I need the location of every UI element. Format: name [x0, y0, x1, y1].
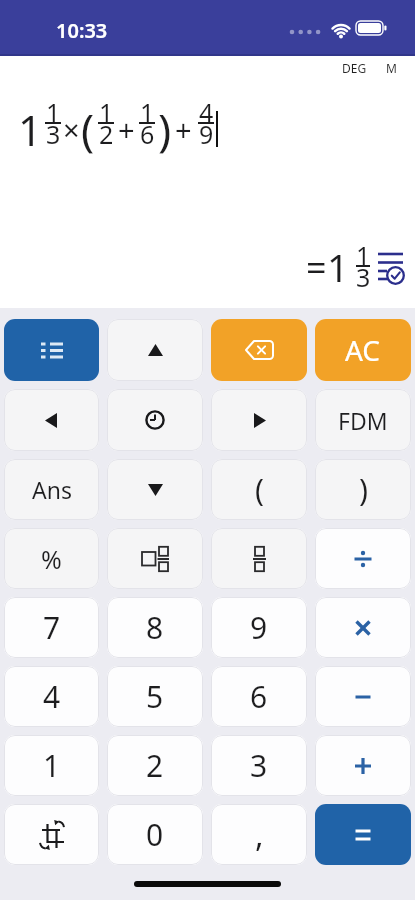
button[interactable]: 9: [211, 597, 307, 658]
button[interactable]: %: [4, 528, 99, 589]
button[interactable]: [4, 804, 99, 865]
button[interactable]: 1: [4, 735, 99, 796]
button[interactable]: 4: [4, 666, 99, 727]
button[interactable]: [211, 319, 307, 381]
button[interactable]: 2: [107, 735, 203, 796]
staticText: +: [175, 110, 192, 149]
staticText: 6: [250, 676, 268, 717]
staticText: =: [306, 243, 327, 292]
button[interactable]: 5: [107, 666, 203, 727]
staticText: +: [118, 110, 135, 149]
button[interactable]: ): [315, 459, 411, 520]
button[interactable]: [315, 528, 411, 589]
button[interactable]: [315, 735, 411, 796]
button[interactable]: [315, 597, 411, 658]
button[interactable]: Ans: [4, 459, 99, 520]
button[interactable]: [107, 319, 203, 381]
button[interactable]: [211, 528, 307, 589]
staticText: 3: [250, 745, 268, 786]
button[interactable]: [107, 389, 203, 451]
staticText: 2: [99, 117, 114, 151]
button[interactable]: 6: [211, 666, 307, 727]
button[interactable]: 8: [107, 597, 203, 658]
staticText: 9: [199, 117, 214, 151]
staticText: 6: [140, 117, 155, 151]
staticText: 8: [146, 607, 164, 648]
button[interactable]: ,: [211, 804, 307, 865]
staticText: ,: [255, 813, 264, 857]
staticText: (: [255, 469, 264, 510]
button[interactable]: (: [211, 459, 307, 520]
staticText: 9: [250, 607, 268, 648]
staticText: 3: [356, 260, 371, 294]
staticText: 1: [46, 95, 61, 129]
staticText: FDM: [338, 405, 388, 436]
button[interactable]: [107, 459, 203, 520]
button[interactable]: [378, 249, 404, 285]
staticText: Ans: [32, 474, 72, 505]
button[interactable]: [4, 389, 99, 451]
button[interactable]: [107, 528, 203, 589]
staticText: AC: [345, 331, 381, 369]
staticText: 1: [356, 238, 371, 272]
staticText: ×: [63, 110, 80, 149]
staticText: 0: [146, 814, 164, 855]
staticText: DEG: [342, 60, 367, 76]
staticText: 5: [146, 676, 164, 717]
staticText: 1: [327, 241, 349, 293]
button[interactable]: FDM: [315, 389, 411, 451]
staticText: 1: [18, 101, 43, 158]
staticText: (: [81, 99, 95, 159]
staticText: 1: [99, 95, 114, 129]
staticText: ): [359, 469, 368, 510]
button[interactable]: 7: [4, 597, 99, 658]
staticText: 4: [43, 676, 61, 717]
button[interactable]: [315, 804, 411, 865]
staticText: 1: [43, 745, 61, 786]
button[interactable]: [315, 666, 411, 727]
staticText: 1: [140, 95, 155, 129]
staticText: 3: [46, 117, 61, 151]
button[interactable]: [211, 389, 307, 451]
staticText: M: [386, 60, 397, 76]
staticText: 7: [43, 607, 61, 648]
button[interactable]: [4, 319, 99, 381]
button[interactable]: 0: [107, 804, 203, 865]
staticText: 4: [199, 95, 214, 129]
staticText: %: [41, 542, 62, 576]
button[interactable]: 3: [211, 735, 307, 796]
staticText: 10:33: [56, 17, 108, 44]
staticText: 2: [146, 745, 164, 786]
staticText: ): [158, 99, 172, 159]
button[interactable]: AC: [315, 319, 411, 381]
